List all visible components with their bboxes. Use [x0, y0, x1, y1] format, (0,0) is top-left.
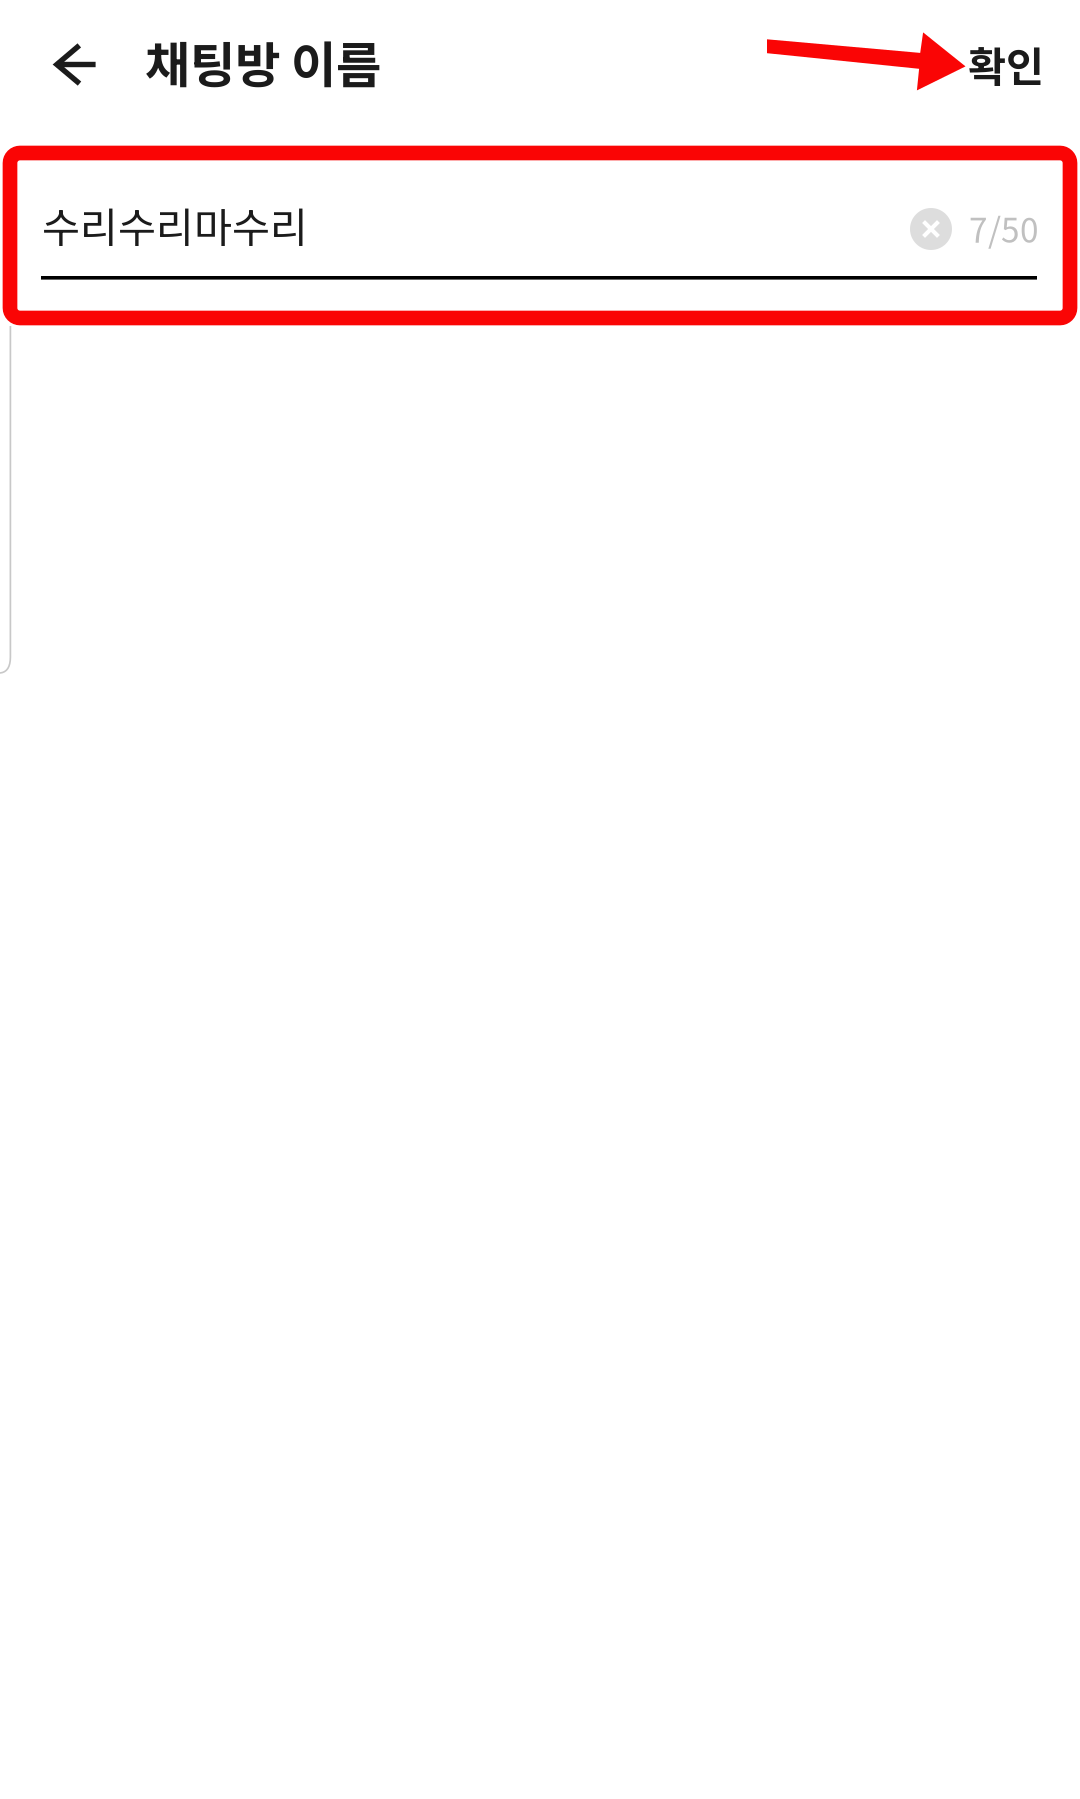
staticText: 수리수리마수리 [42, 195, 308, 255]
staticText: 채팅방 이름 [145, 26, 381, 97]
button[interactable]: 수리수리마수리 [41, 181, 1037, 280]
button[interactable]: Clear text [910, 208, 952, 250]
staticText: 7/50 [969, 204, 1039, 252]
button[interactable]: Back [42, 28, 109, 101]
button[interactable]: 확인 [960, 26, 1052, 102]
staticText: 확인 [968, 34, 1044, 94]
